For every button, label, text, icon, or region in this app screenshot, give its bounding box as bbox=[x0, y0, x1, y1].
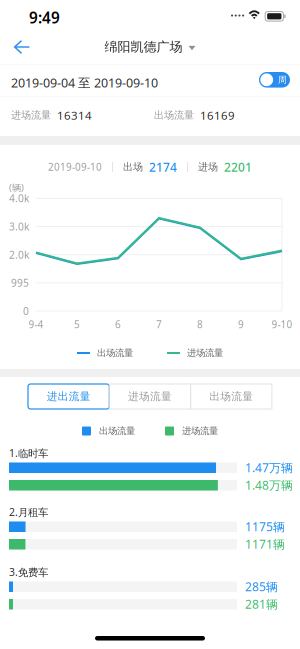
button[interactable]: Back bbox=[0, 30, 44, 64]
staticText: 周 bbox=[278, 74, 287, 85]
staticText: 6 bbox=[115, 318, 121, 331]
staticText: (辆) bbox=[9, 181, 24, 194]
staticText: 8 bbox=[197, 318, 203, 331]
staticText: 出场流量 bbox=[97, 347, 133, 359]
staticText: 9 bbox=[238, 318, 244, 331]
staticText: 1.临时车 bbox=[9, 446, 48, 460]
staticText: 285辆 bbox=[245, 578, 278, 595]
button[interactable]: Week view bbox=[259, 72, 290, 88]
staticText: 绵阳凯德广场 bbox=[104, 39, 182, 55]
staticText: 出场 bbox=[123, 161, 143, 173]
staticText: 5 bbox=[74, 318, 80, 331]
staticText: 16314 bbox=[57, 107, 92, 123]
staticText: 2201 bbox=[224, 159, 252, 175]
staticText: 2019-09-04 至 2019-09-10 bbox=[11, 74, 158, 91]
staticText: 2019-09-10 bbox=[48, 160, 102, 174]
staticText: 进场流量 bbox=[182, 425, 218, 437]
staticText: 2.月租车 bbox=[9, 505, 48, 519]
staticText: 1175辆 bbox=[245, 518, 285, 535]
staticText: 0 bbox=[23, 304, 29, 318]
staticText: 7 bbox=[156, 318, 162, 331]
staticText: 1171辆 bbox=[245, 536, 285, 552]
staticText: 3.0k bbox=[9, 220, 29, 233]
staticText: 9-4 bbox=[28, 318, 43, 331]
staticText: 9:49 bbox=[29, 7, 60, 28]
staticText: 进场流量 bbox=[11, 109, 51, 122]
staticText: 3.免费车 bbox=[9, 565, 48, 579]
staticText: 出场流量 bbox=[209, 390, 253, 403]
staticText: 995 bbox=[11, 276, 29, 290]
button[interactable]: 进出流量 bbox=[28, 384, 109, 409]
staticText: 4.0k bbox=[9, 191, 29, 205]
staticText: 2.0k bbox=[9, 248, 29, 262]
staticText: 进场流量 bbox=[128, 390, 172, 403]
staticText: 进场 bbox=[198, 161, 218, 173]
staticText: 出场流量 bbox=[99, 425, 135, 437]
staticText: 16169 bbox=[200, 107, 235, 123]
button[interactable]: 出场流量 bbox=[191, 384, 272, 409]
staticText: 进出流量 bbox=[47, 390, 91, 403]
staticText: 进场流量 bbox=[187, 347, 223, 359]
staticText: 281辆 bbox=[245, 596, 278, 612]
staticText: 1.48万辆 bbox=[245, 477, 293, 493]
button[interactable]: 进场流量 bbox=[109, 384, 191, 409]
staticText: 9-10 bbox=[271, 318, 292, 331]
staticText: 1.47万辆 bbox=[245, 459, 293, 476]
staticText: 出场流量 bbox=[154, 109, 194, 122]
staticText: 2174 bbox=[149, 159, 177, 175]
